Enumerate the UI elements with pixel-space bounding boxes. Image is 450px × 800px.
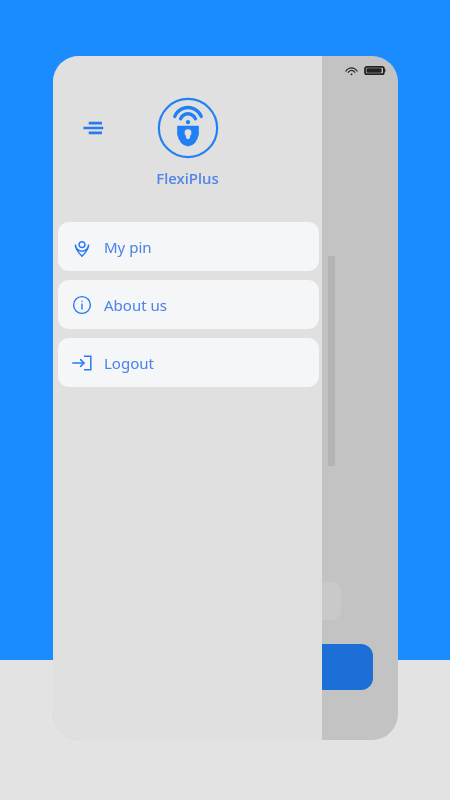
button[interactable]: Logout [58,338,319,387]
button[interactable]: Menu [78,112,110,144]
button[interactable] [268,644,373,690]
staticText: My pin [104,237,152,257]
button[interactable]: 5 kb [263,582,341,620]
button[interactable]: About us [58,280,319,329]
staticText: About us [104,295,167,315]
button[interactable]: My pin [58,222,319,271]
staticText: Logout [104,353,154,373]
staticText: FlexiPlus [156,168,219,188]
